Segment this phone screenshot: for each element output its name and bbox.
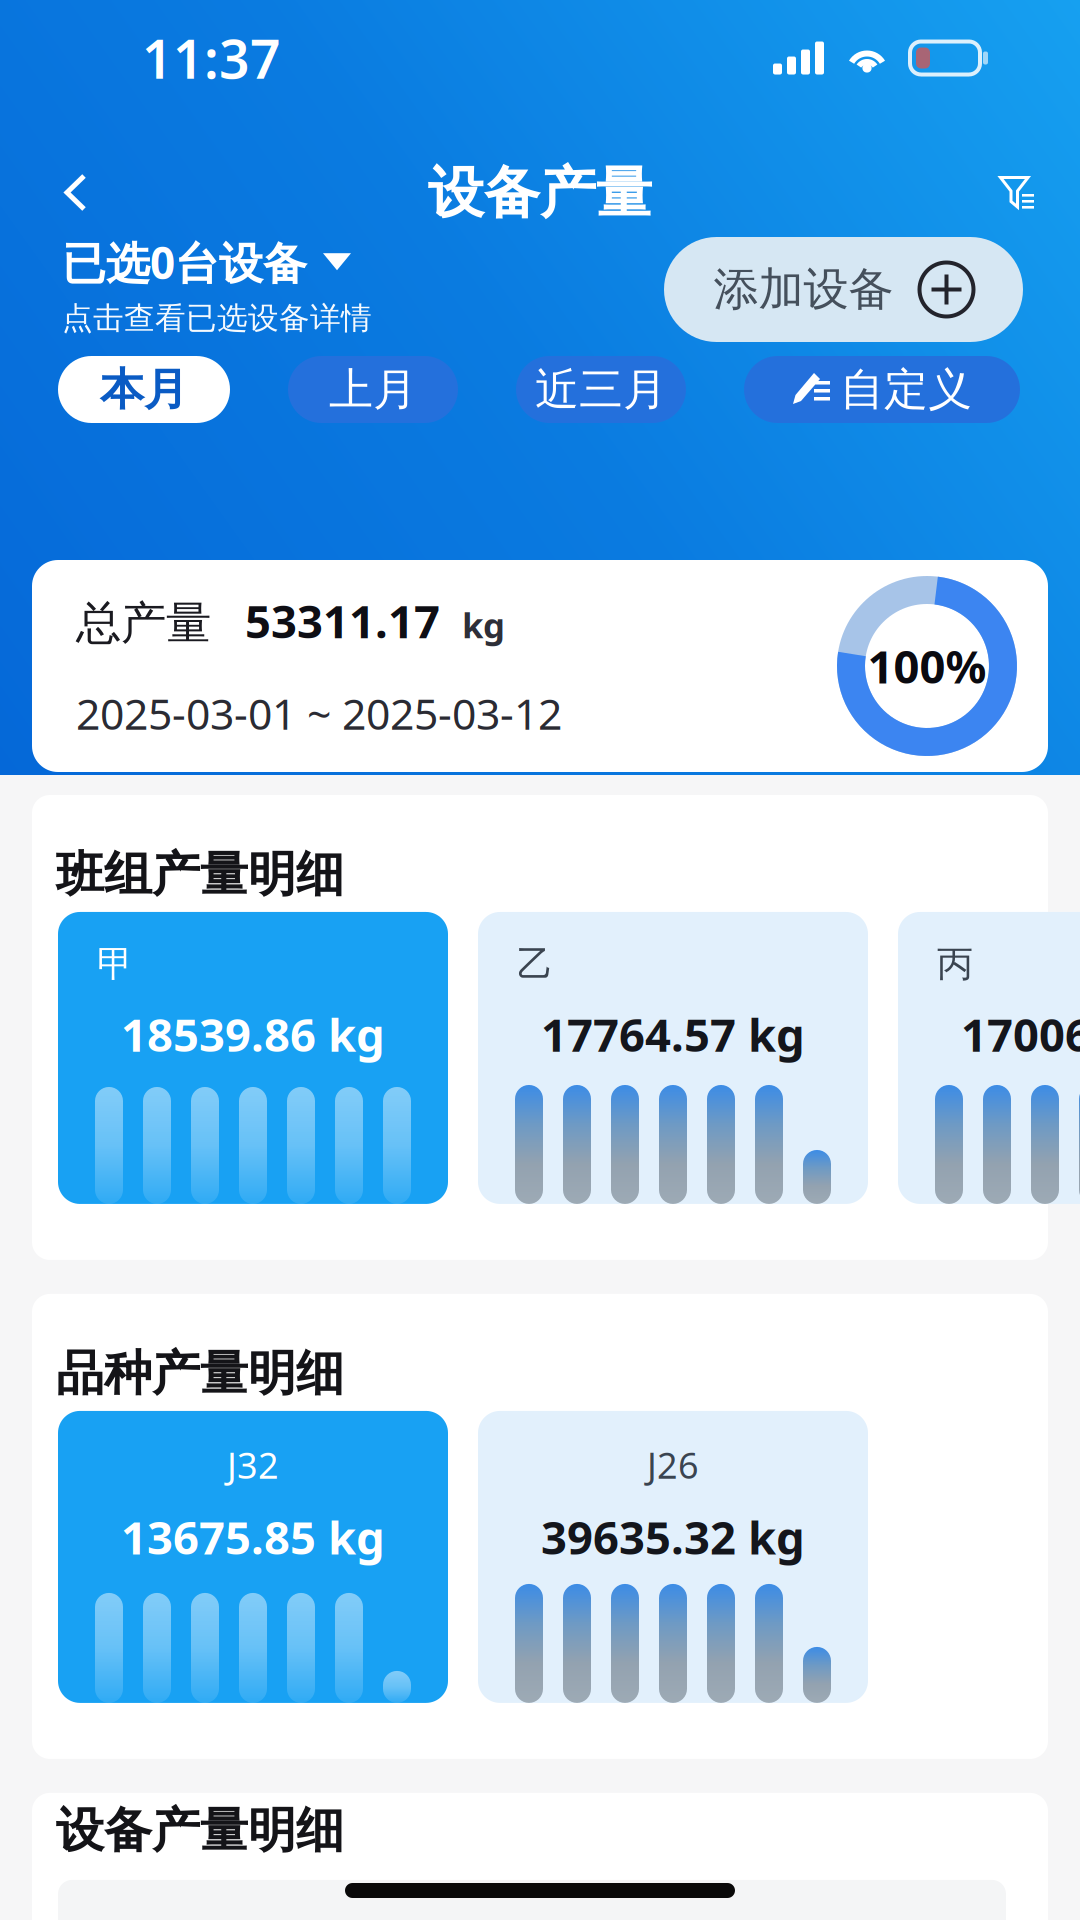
button[interactable]: 已选0台设备 bbox=[62, 233, 372, 337]
staticText: J32 bbox=[227, 1441, 279, 1489]
staticText: 已选0台设备 bbox=[62, 233, 307, 291]
staticText: 18539.86 kg bbox=[121, 1004, 385, 1064]
staticText: 自定义 bbox=[840, 362, 972, 416]
button[interactable]: J26 bbox=[478, 1411, 868, 1703]
staticText: 甲 bbox=[97, 942, 133, 986]
staticText: 本月 bbox=[100, 362, 188, 416]
button[interactable]: Filter bbox=[982, 160, 1056, 226]
staticText: 设备产量明细 bbox=[56, 1801, 344, 1860]
button[interactable]: 添加设备 bbox=[664, 237, 1023, 342]
staticText: 近三月 bbox=[535, 362, 667, 416]
button[interactable]: 乙 bbox=[478, 912, 868, 1204]
button[interactable]: 甲 bbox=[58, 912, 448, 1204]
staticText: kg bbox=[462, 602, 505, 648]
staticText: 17764.57 kg bbox=[541, 1004, 805, 1064]
button[interactable]: 上月 bbox=[288, 356, 458, 423]
button[interactable]: 近三月 bbox=[516, 356, 686, 423]
staticText: J26 bbox=[647, 1441, 699, 1489]
staticText: 品种产量明细 bbox=[56, 1344, 344, 1403]
staticText: 丙 bbox=[937, 942, 973, 986]
staticText: 点击查看已选设备详情 bbox=[62, 299, 372, 337]
staticText: 添加设备 bbox=[713, 262, 893, 317]
staticText: 100% bbox=[867, 636, 986, 696]
button[interactable]: 本月 bbox=[58, 356, 230, 423]
staticText: 总产量 bbox=[76, 595, 211, 651]
staticText: 13675.85 kg bbox=[121, 1507, 385, 1567]
button[interactable]: 丙 bbox=[898, 912, 1080, 1204]
staticText: 11:37 bbox=[142, 23, 281, 93]
staticText: 班组产量明细 bbox=[56, 845, 344, 904]
staticText: 17006.74 kg bbox=[961, 1004, 1080, 1064]
staticText: 2025-03-01 ~ 2025-03-12 bbox=[76, 685, 562, 742]
staticText: 设备产量 bbox=[428, 159, 652, 227]
button[interactable]: Back bbox=[44, 160, 108, 226]
staticText: 53311.17 bbox=[245, 590, 440, 651]
staticText: 上月 bbox=[329, 362, 417, 416]
staticText: 39635.32 kg bbox=[541, 1507, 805, 1567]
staticText: 乙 bbox=[517, 942, 553, 986]
button[interactable]: 自定义 bbox=[744, 356, 1020, 423]
button[interactable]: J32 bbox=[58, 1411, 448, 1703]
